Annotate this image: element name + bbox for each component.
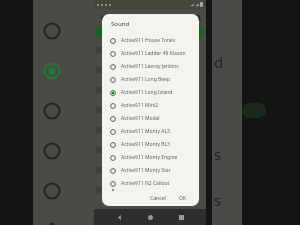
button[interactable]: Active911 Modal [102,112,199,125]
button[interactable]: Active911 N2 Callout [102,177,199,190]
button[interactable]: OK [175,193,191,204]
staticText: Active911 Mini2 [121,102,158,109]
button[interactable]: Active911 Mini2 [102,99,199,112]
button[interactable]: Active911 Long Beep [102,73,199,86]
staticText: Active911 Leeroy Jenkins [121,63,179,70]
button[interactable]: Back [98,13,107,22]
button[interactable]: Home [144,211,156,223]
button[interactable]: Active911 Leeroy Jenkins [102,60,199,73]
staticText: s [214,144,222,162]
staticText: Active911 Ladder 49 Klaxon [121,50,186,57]
button[interactable]: Back [113,211,125,223]
button[interactable]: Active911 Long Island [102,86,199,99]
staticText: Active911 Modal [121,115,160,122]
button[interactable]: Search [193,13,202,22]
button[interactable]: Cancel [146,193,170,204]
staticText: Active911 Monty Engine [121,154,178,161]
staticText: Active911 Monty BL3 [121,141,170,148]
button[interactable]: Active911 Monty AL3 [102,125,199,138]
button[interactable]: Active911 Ladder 49 Klaxon [102,47,199,60]
staticText: Active911 N2 Callout [121,180,170,187]
staticText: Cancel [150,195,166,202]
button[interactable]: Active911 Monty BL3 [102,138,199,151]
button[interactable]: Active911 Monty Engine [102,151,199,164]
staticText: s [214,190,222,208]
staticText: Active911 Monty Star [121,167,171,174]
staticText: Active911 Monty AL3 [121,128,170,135]
staticText: Active911 House Tones [121,37,176,44]
button[interactable]: Active911 Monty Star [102,164,199,177]
staticText: Active911 Long Beep [121,76,171,83]
staticText: Active911 Long Island [121,89,173,96]
staticText: Sound [111,20,130,28]
staticText: OK [179,195,187,202]
button[interactable]: Active911 House Tones [102,34,199,47]
staticText: d [214,52,224,70]
button[interactable]: Recent apps [175,211,187,223]
